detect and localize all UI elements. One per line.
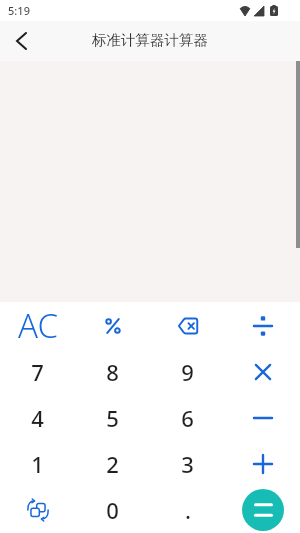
staticText: 3 [181,449,194,479]
button[interactable]: Equals [242,489,284,531]
button[interactable]: Divide [225,302,300,349]
button[interactable]: Percent [75,302,150,349]
button[interactable]: Backspace [150,302,225,349]
staticText: 5 [106,403,119,433]
staticText: 6 [181,403,194,433]
button[interactable]: 6 [150,395,225,441]
staticText: 9 [181,357,194,387]
staticText: 8 [106,357,119,387]
button[interactable]: 3 [150,441,225,487]
staticText: 5:19 [8,3,30,18]
button[interactable]: Unit converter [0,487,75,533]
staticText: . [185,495,191,525]
staticText: 1 [31,449,44,479]
button[interactable]: Plus [225,441,300,487]
button[interactable]: 7 [0,349,75,395]
button[interactable]: 8 [75,349,150,395]
button[interactable]: 9 [150,349,225,395]
button[interactable]: 1 [0,441,75,487]
button[interactable]: Minus [225,395,300,441]
button[interactable]: Back [5,25,37,57]
button[interactable]: Multiply [225,349,300,395]
staticText: 0 [106,495,119,525]
button[interactable]: 2 [75,441,150,487]
staticText: 7 [31,357,44,387]
button[interactable]: 4 [0,395,75,441]
staticText: 4 [31,403,44,433]
button[interactable]: 0 [75,487,150,533]
staticText: 2 [106,449,119,479]
button[interactable]: 5 [75,395,150,441]
button[interactable]: AC [0,302,75,349]
button[interactable]: . [150,487,225,533]
staticText: 标准计算器计算器 [92,31,208,49]
staticText: AC [18,303,58,348]
